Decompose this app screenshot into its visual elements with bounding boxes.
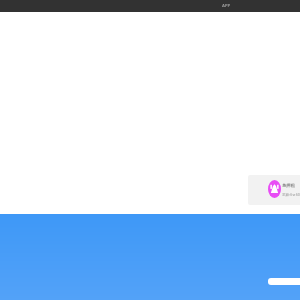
staticText: APP <box>222 3 231 9</box>
other: VIP <box>268 180 281 198</box>
button[interactable]: 立即租用 <box>268 278 300 285</box>
staticText: 免押租 <box>282 183 295 188</box>
button[interactable]: VIP <box>248 175 300 205</box>
staticText: 芝麻分≥600 <box>282 192 300 197</box>
